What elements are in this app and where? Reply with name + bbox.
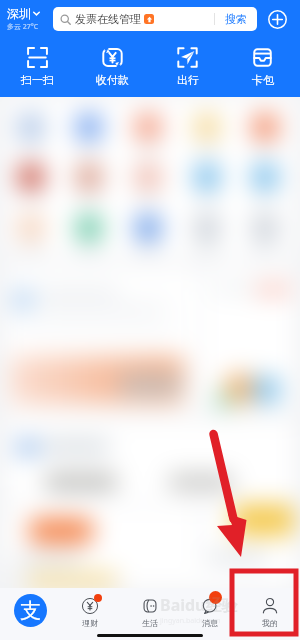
button[interactable]: 生活 xyxy=(120,588,180,632)
button[interactable]: 出行 xyxy=(150,37,225,97)
staticText: 卡包 xyxy=(252,73,274,87)
button[interactable]: Add xyxy=(266,8,288,30)
staticText: 收付款 xyxy=(96,73,129,87)
button[interactable]: 扫一扫 xyxy=(0,37,75,97)
staticText: 搜索 xyxy=(225,12,247,26)
button[interactable]: 消息 xyxy=(180,588,240,632)
staticText: Baidu经验 xyxy=(160,594,238,616)
staticText: 发票在线管理 xyxy=(75,12,141,26)
staticText: 多云 27°C xyxy=(7,22,39,32)
button[interactable]: 收付款 xyxy=(75,37,150,97)
staticText: 理财 xyxy=(82,618,98,628)
staticText: 消息 xyxy=(202,618,218,628)
button[interactable]: 深圳 xyxy=(0,0,53,37)
button[interactable]: 理财 xyxy=(60,588,120,632)
button[interactable]: 搜索 xyxy=(215,7,257,31)
button[interactable]: 卡包 xyxy=(225,37,300,97)
button[interactable]: 发票在线管理 xyxy=(53,7,257,31)
button[interactable]: 首页 xyxy=(0,588,60,632)
staticText: 我的 xyxy=(262,618,278,628)
staticText: 深圳 xyxy=(7,6,31,21)
staticText: 生活 xyxy=(142,618,158,628)
staticText: 扫一扫 xyxy=(21,73,54,87)
staticText: 支 xyxy=(20,598,41,624)
button[interactable]: 我的 xyxy=(240,588,300,632)
staticText: jingyan.baidu.com xyxy=(160,616,221,626)
staticText: 出行 xyxy=(177,73,199,87)
